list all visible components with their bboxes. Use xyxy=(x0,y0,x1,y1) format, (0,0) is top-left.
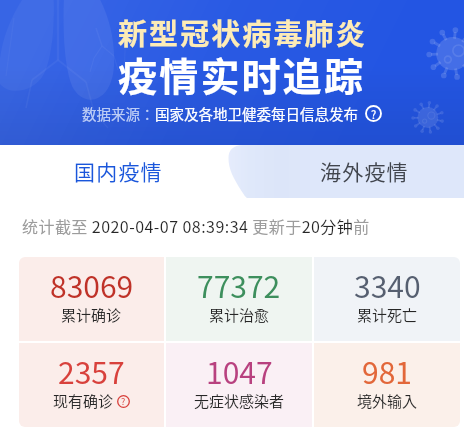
staticText: 新型冠状病毒肺炎 xyxy=(118,11,367,53)
button[interactable]: 77372 xyxy=(166,257,312,341)
staticText: 数据来源： xyxy=(82,103,155,124)
button[interactable]: 数据来源说明 xyxy=(365,105,382,122)
staticText: 2357 xyxy=(58,349,125,392)
staticText: 疫情实时追踪 xyxy=(118,46,366,102)
button[interactable]: 83069 xyxy=(19,257,164,341)
staticText: 现有确诊 xyxy=(53,390,114,412)
staticText: 77372 xyxy=(197,263,281,306)
staticText: 无症状感染者 xyxy=(194,390,285,412)
button[interactable]: 3340 xyxy=(314,257,460,341)
button[interactable]: 981 xyxy=(314,343,460,427)
staticText: 统计截至 2020-04-07 08:39:34 更新于20分钟前 xyxy=(22,214,370,237)
staticText: 累计确诊 xyxy=(61,304,122,326)
staticText: 国家及各地卫健委每日信息发布 xyxy=(155,103,358,124)
button[interactable]: 1047 xyxy=(166,343,312,427)
staticText: ? xyxy=(371,106,377,122)
staticText: 累计死亡 xyxy=(357,304,418,326)
button[interactable]: 海外疫情 xyxy=(0,145,464,198)
staticText: 83069 xyxy=(50,263,134,306)
other: 现有确诊说明 xyxy=(117,395,130,408)
staticText: 国内疫情 xyxy=(74,156,163,186)
staticText: ? xyxy=(121,395,126,408)
staticText: 境外输入 xyxy=(357,390,418,412)
staticText: 981 xyxy=(362,349,412,392)
staticText: 海外疫情 xyxy=(320,156,409,186)
staticText: 累计治愈 xyxy=(209,304,270,326)
button[interactable]: 国内疫情 xyxy=(0,145,226,198)
button[interactable]: 2357 xyxy=(19,343,164,427)
staticText: 1047 xyxy=(206,349,273,392)
staticText: 3340 xyxy=(354,263,421,306)
